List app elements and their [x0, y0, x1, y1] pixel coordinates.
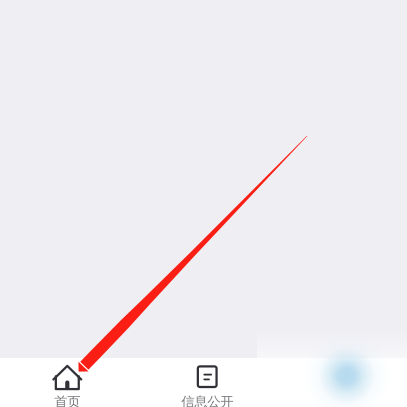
- button[interactable]: 信息公开: [135, 358, 280, 407]
- staticText: 信息公开: [181, 393, 233, 407]
- staticText: 首页: [54, 393, 80, 407]
- button[interactable]: 首页: [0, 358, 135, 407]
